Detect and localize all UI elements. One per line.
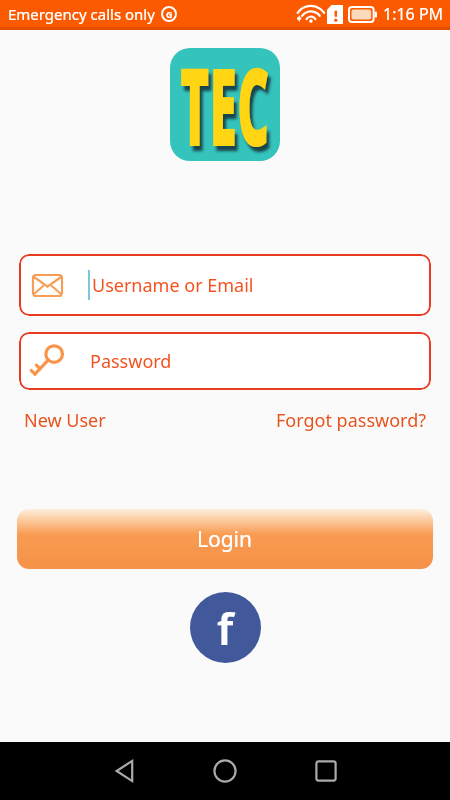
staticText: Emergency calls only [8,4,155,24]
staticText: Password [90,349,172,374]
button[interactable]: f [190,592,261,663]
staticText: G [166,8,173,20]
button[interactable]: New User [24,408,106,433]
staticText: TEC [180,48,270,161]
button[interactable] [213,759,237,783]
staticText: Login [197,525,253,554]
button[interactable]: Forgot password? [276,408,427,433]
button[interactable]: Password [19,332,431,390]
button[interactable] [314,759,338,783]
button[interactable]: Username or Email [19,254,431,316]
button[interactable] [113,759,137,783]
staticText: f [217,598,234,658]
button[interactable]: Login [17,509,433,569]
staticText: 1:16 PM [383,3,444,25]
staticText: Username or Email [92,273,254,298]
